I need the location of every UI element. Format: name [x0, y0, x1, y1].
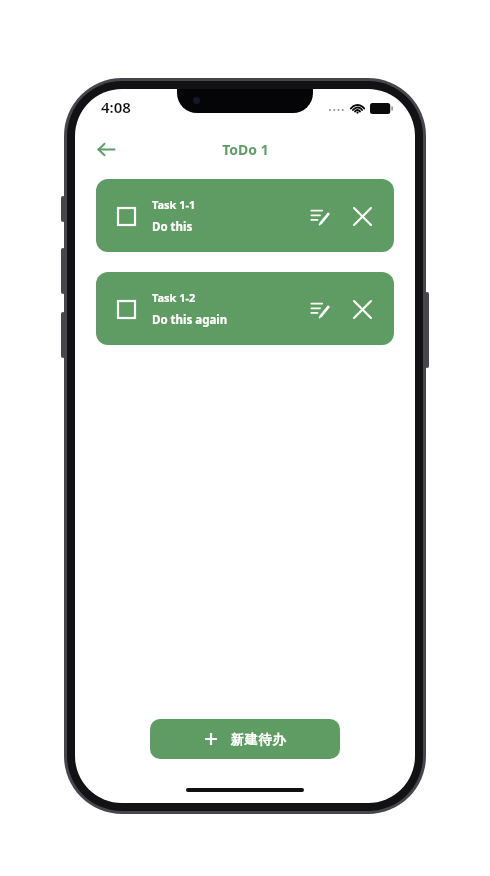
staticText: 新建待办 [230, 731, 286, 747]
button[interactable]: Delete task [346, 200, 378, 232]
staticText: ToDo 1 [222, 140, 269, 159]
button[interactable]: Delete task [346, 293, 378, 325]
button[interactable]: Edit task [304, 200, 336, 232]
button[interactable]: Edit task [304, 293, 336, 325]
button[interactable]: Toggle task complete [96, 272, 394, 345]
button[interactable]: 新建待办 [150, 719, 340, 759]
button[interactable]: Toggle task complete [112, 295, 140, 323]
button[interactable]: Toggle task complete [112, 202, 140, 230]
staticText: Do this [152, 219, 193, 235]
staticText: 4:08 [101, 97, 131, 117]
staticText: Task 1-1 [152, 197, 196, 212]
button[interactable]: Toggle task complete [96, 179, 394, 252]
button[interactable]: Back [87, 130, 125, 168]
staticText: Task 1-2 [152, 290, 196, 305]
staticText: Do this again [152, 312, 228, 328]
